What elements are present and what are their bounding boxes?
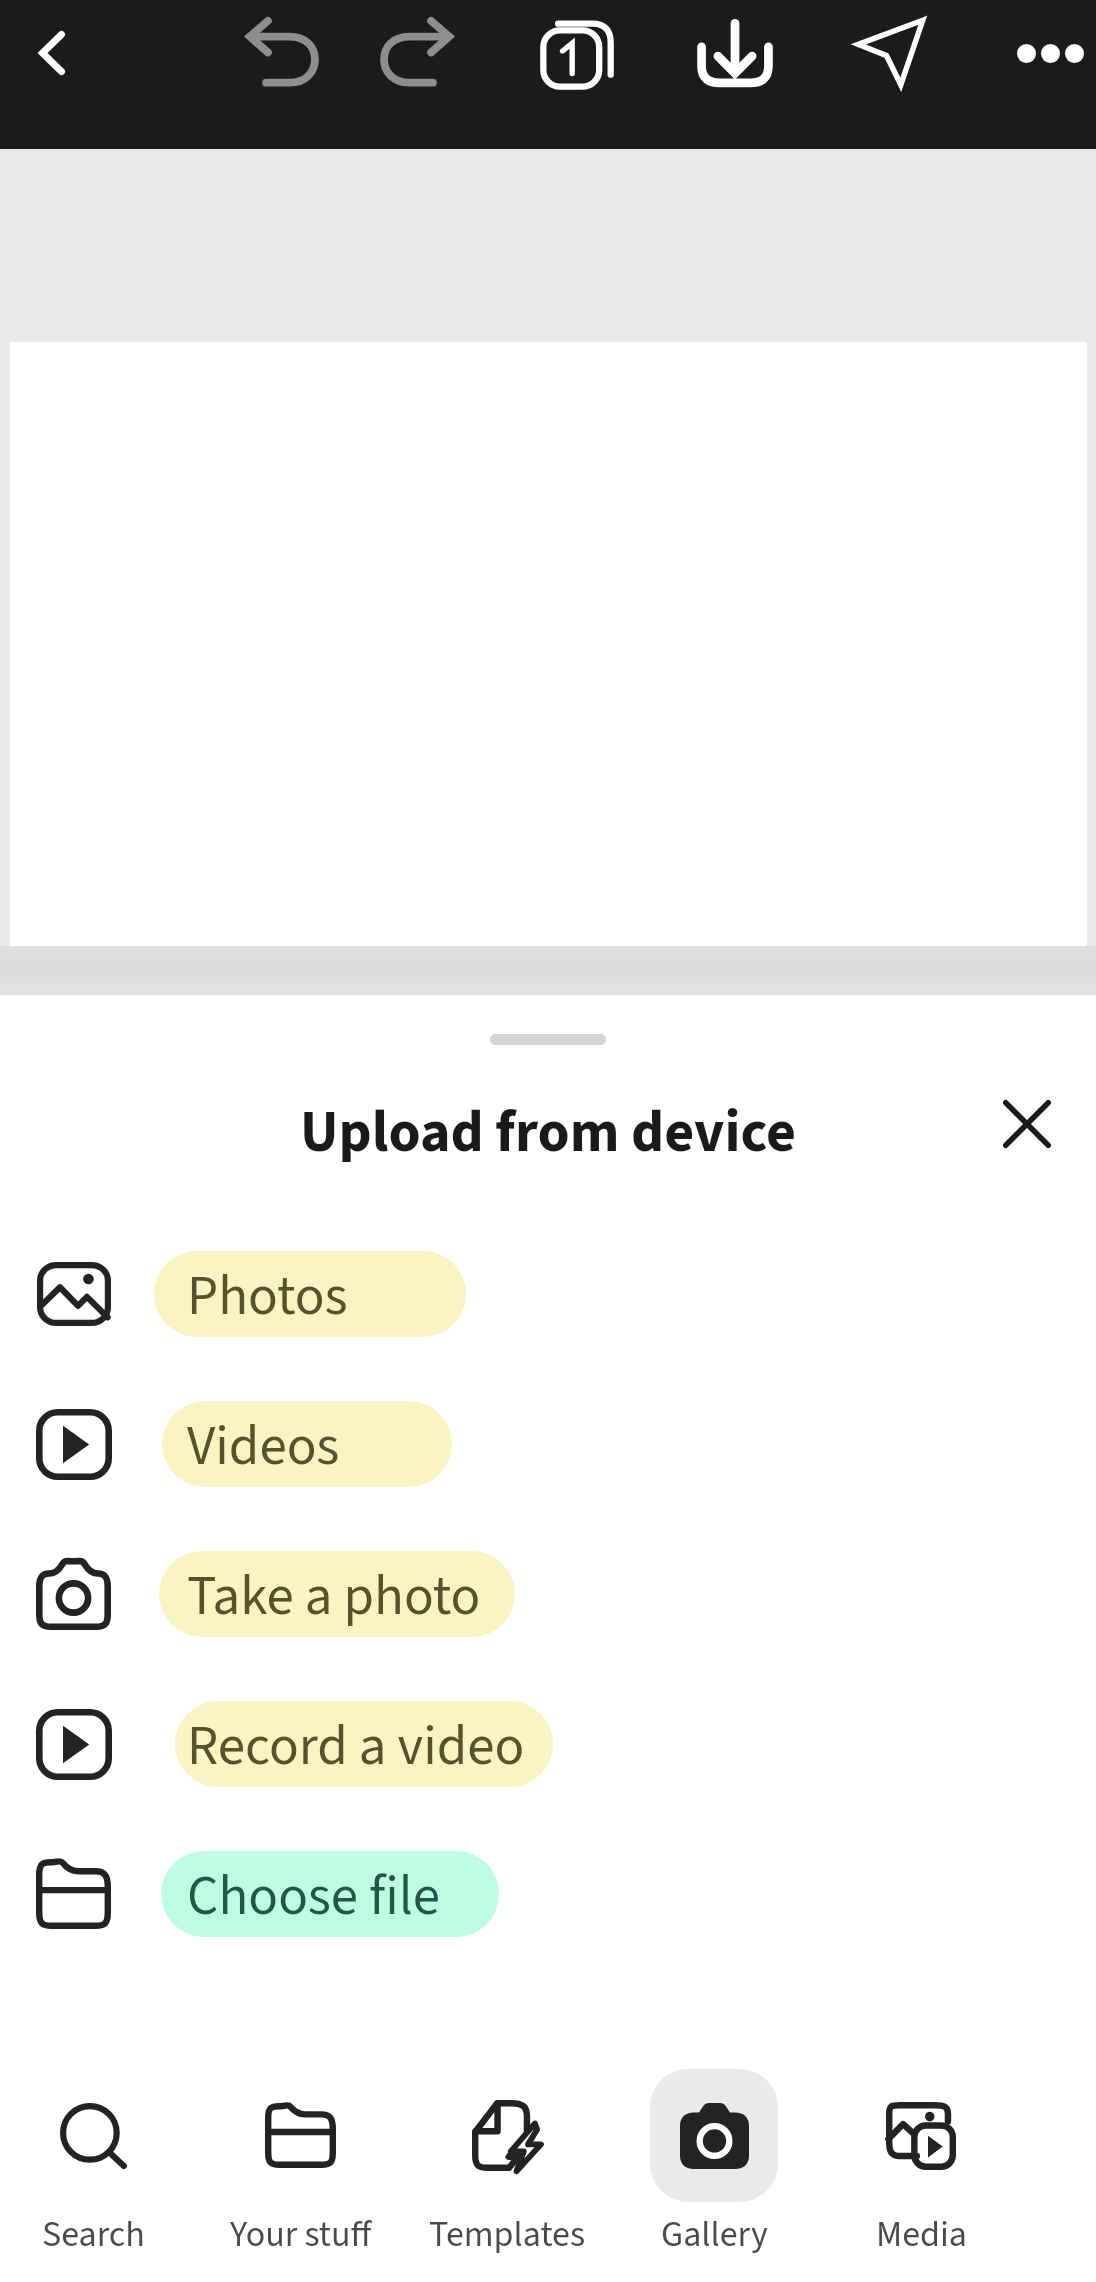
button[interactable]: Photos <box>0 1219 1096 1369</box>
button[interactable]: Gallery <box>611 2050 818 2282</box>
button[interactable]: Search <box>0 2050 197 2282</box>
staticText: Videos <box>187 1408 340 1486</box>
button[interactable]: Take a photo <box>0 1519 1096 1669</box>
button[interactable]: More options <box>998 1 1096 105</box>
button[interactable]: Media <box>818 2050 1025 2282</box>
button[interactable]: Choose file <box>0 1819 1096 1969</box>
staticText: Choose file <box>187 1858 441 1936</box>
button[interactable]: Record a video <box>0 1669 1096 1819</box>
button[interactable]: Back <box>0 1 104 105</box>
staticText: Gallery <box>661 2209 768 2260</box>
staticText: Take a photo <box>187 1558 481 1636</box>
button[interactable]: Share <box>838 0 942 104</box>
staticText: Templates <box>429 2209 586 2260</box>
staticText: Record a video <box>187 1708 525 1786</box>
staticText: Your stuff <box>230 2209 372 2260</box>
button[interactable]: Undo <box>230 0 334 104</box>
button[interactable]: Close <box>985 1082 1069 1166</box>
button[interactable]: Templates <box>404 2050 611 2282</box>
button[interactable]: Your stuff <box>197 2050 404 2282</box>
staticText: Upload from device <box>300 1092 796 1175</box>
staticText: Media <box>876 2209 968 2260</box>
button[interactable]: Videos <box>0 1369 1096 1519</box>
button[interactable]: Pages <box>525 0 629 104</box>
staticText: Photos <box>187 1258 348 1336</box>
staticText: Search <box>42 2209 145 2260</box>
button[interactable]: Download <box>683 1 787 105</box>
button[interactable]: Redo <box>365 0 469 104</box>
